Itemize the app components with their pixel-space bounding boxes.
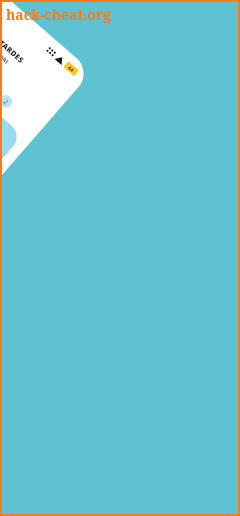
staticText: ¡BUENAS TARDES [0, 14, 26, 65]
staticText: 2 [2, 97, 10, 107]
button[interactable]: CUMBRES 2 [0, 57, 23, 221]
staticText: hack-cheat.org [6, 5, 112, 24]
staticText: ANTHONY AMADORI [0, 23, 10, 65]
staticText: 44 [66, 64, 76, 73]
staticText: 4:52 [0, 0, 4, 11]
